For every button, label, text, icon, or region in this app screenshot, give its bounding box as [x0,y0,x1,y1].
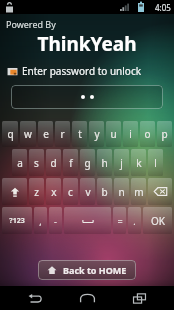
button[interactable]: y [89,121,104,147]
button[interactable] [64,207,111,234]
button[interactable]: s [29,149,44,176]
button[interactable]: - [49,207,62,234]
button[interactable]: r [55,121,70,147]
button[interactable]: o [140,121,155,147]
button[interactable]: OK [143,207,172,234]
staticText: b [101,185,108,199]
staticText: ThinkYeah [0,31,174,57]
staticText: e [43,127,49,141]
button[interactable]: p [157,121,172,147]
button[interactable]: w [20,121,36,147]
staticText: d [50,156,57,170]
staticText: c [68,185,73,199]
staticText: q [7,127,14,141]
button[interactable] [148,178,172,205]
button[interactable]: m [131,178,146,205]
staticText: j [120,156,123,170]
button[interactable]: e [38,121,53,147]
button[interactable]: ?123 [2,207,32,234]
button[interactable]: n [114,178,129,205]
button[interactable]: d [46,149,61,176]
button[interactable]: c [63,178,78,205]
button[interactable]: h [97,149,112,176]
button[interactable]: , [34,207,47,234]
staticText: m [134,185,144,199]
staticText: = [117,215,123,227]
button[interactable]: u [106,121,121,147]
staticText: t [78,127,82,141]
staticText: s [34,156,39,170]
button[interactable]: z [29,178,44,205]
staticText: l [154,156,157,170]
staticText: y [94,127,100,141]
staticText: k [136,156,142,170]
button[interactable]: j [114,149,129,176]
staticText: z [34,185,39,199]
staticText: i [129,127,132,141]
button[interactable]: Back to HOME [38,260,136,280]
button[interactable]: i [123,121,138,147]
button[interactable]: Home [70,286,104,310]
button[interactable]: q [2,121,18,147]
staticText: OK [151,214,165,228]
staticText: h [101,156,108,170]
button[interactable]: Password field [11,85,163,109]
button[interactable]: k [131,149,146,176]
staticText: n [118,185,125,199]
staticText: - [54,215,57,227]
button[interactable]: Back [18,286,52,310]
staticText: u [110,127,117,141]
staticText: . [133,215,136,227]
staticText: Powered By [6,18,56,30]
button[interactable]: l [148,149,163,176]
button[interactable]: t [72,121,87,147]
staticText: o [144,127,151,141]
staticText: r [60,127,65,141]
staticText: a [17,156,23,170]
staticText: Back to HOME [63,264,127,276]
staticText: , [39,215,42,227]
button[interactable]: g [80,149,95,176]
staticText: f [69,156,73,170]
staticText: ?123 [9,216,25,226]
staticText: v [85,185,91,199]
button[interactable]: a [12,149,27,176]
staticText: p [161,127,168,141]
button[interactable]: v [80,178,95,205]
button[interactable]: = [113,207,126,234]
button[interactable]: . [128,207,141,234]
staticText: g [84,156,91,170]
staticText: Enter password to unlock [22,64,142,78]
button[interactable] [2,178,27,205]
button[interactable]: x [46,178,61,205]
button[interactable]: f [63,149,78,176]
button[interactable]: Recent apps [122,286,156,310]
staticText: x [51,185,57,199]
staticText: 4:05 [155,2,171,13]
button[interactable]: b [97,178,112,205]
staticText: w [24,127,32,141]
